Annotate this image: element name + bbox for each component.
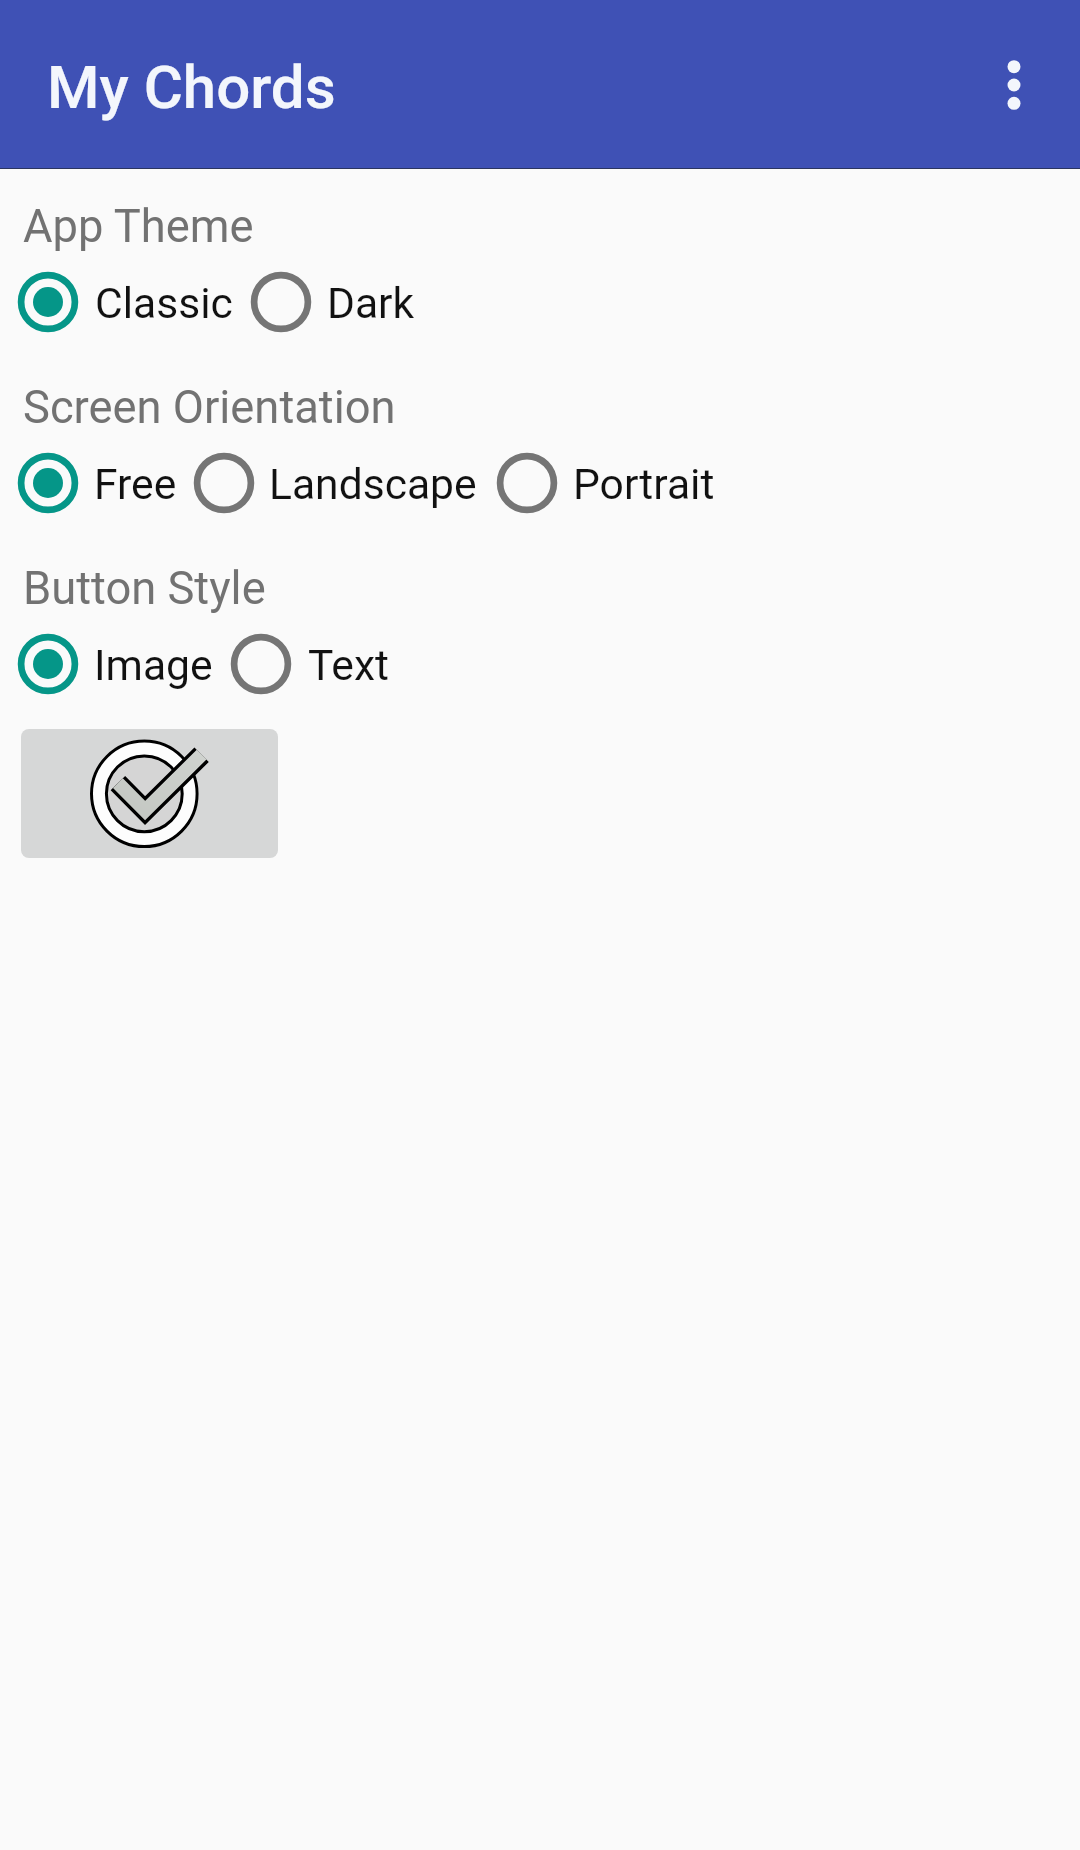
staticText: My Chords (47, 52, 336, 122)
staticText: App Theme (23, 200, 254, 253)
staticText: Text (308, 640, 390, 690)
button[interactable]: Free (9, 444, 176, 522)
button[interactable]: Landscape (185, 444, 478, 522)
button[interactable]: Portrait (488, 444, 715, 522)
staticText: Dark (327, 278, 415, 328)
button[interactable]: Apply (21, 729, 278, 858)
staticText: Classic (95, 278, 233, 328)
button[interactable]: Classic (9, 263, 232, 341)
button[interactable]: Dark (242, 263, 414, 341)
staticText: Image (94, 640, 213, 690)
staticText: Button Style (23, 562, 266, 615)
button[interactable]: Image (9, 625, 212, 703)
button[interactable]: Text (222, 625, 389, 703)
staticText: Free (94, 459, 177, 509)
staticText: Landscape (269, 459, 477, 509)
button[interactable]: More options (966, 37, 1062, 133)
staticText: Screen Orientation (23, 381, 396, 434)
staticText: Portrait (573, 459, 715, 509)
